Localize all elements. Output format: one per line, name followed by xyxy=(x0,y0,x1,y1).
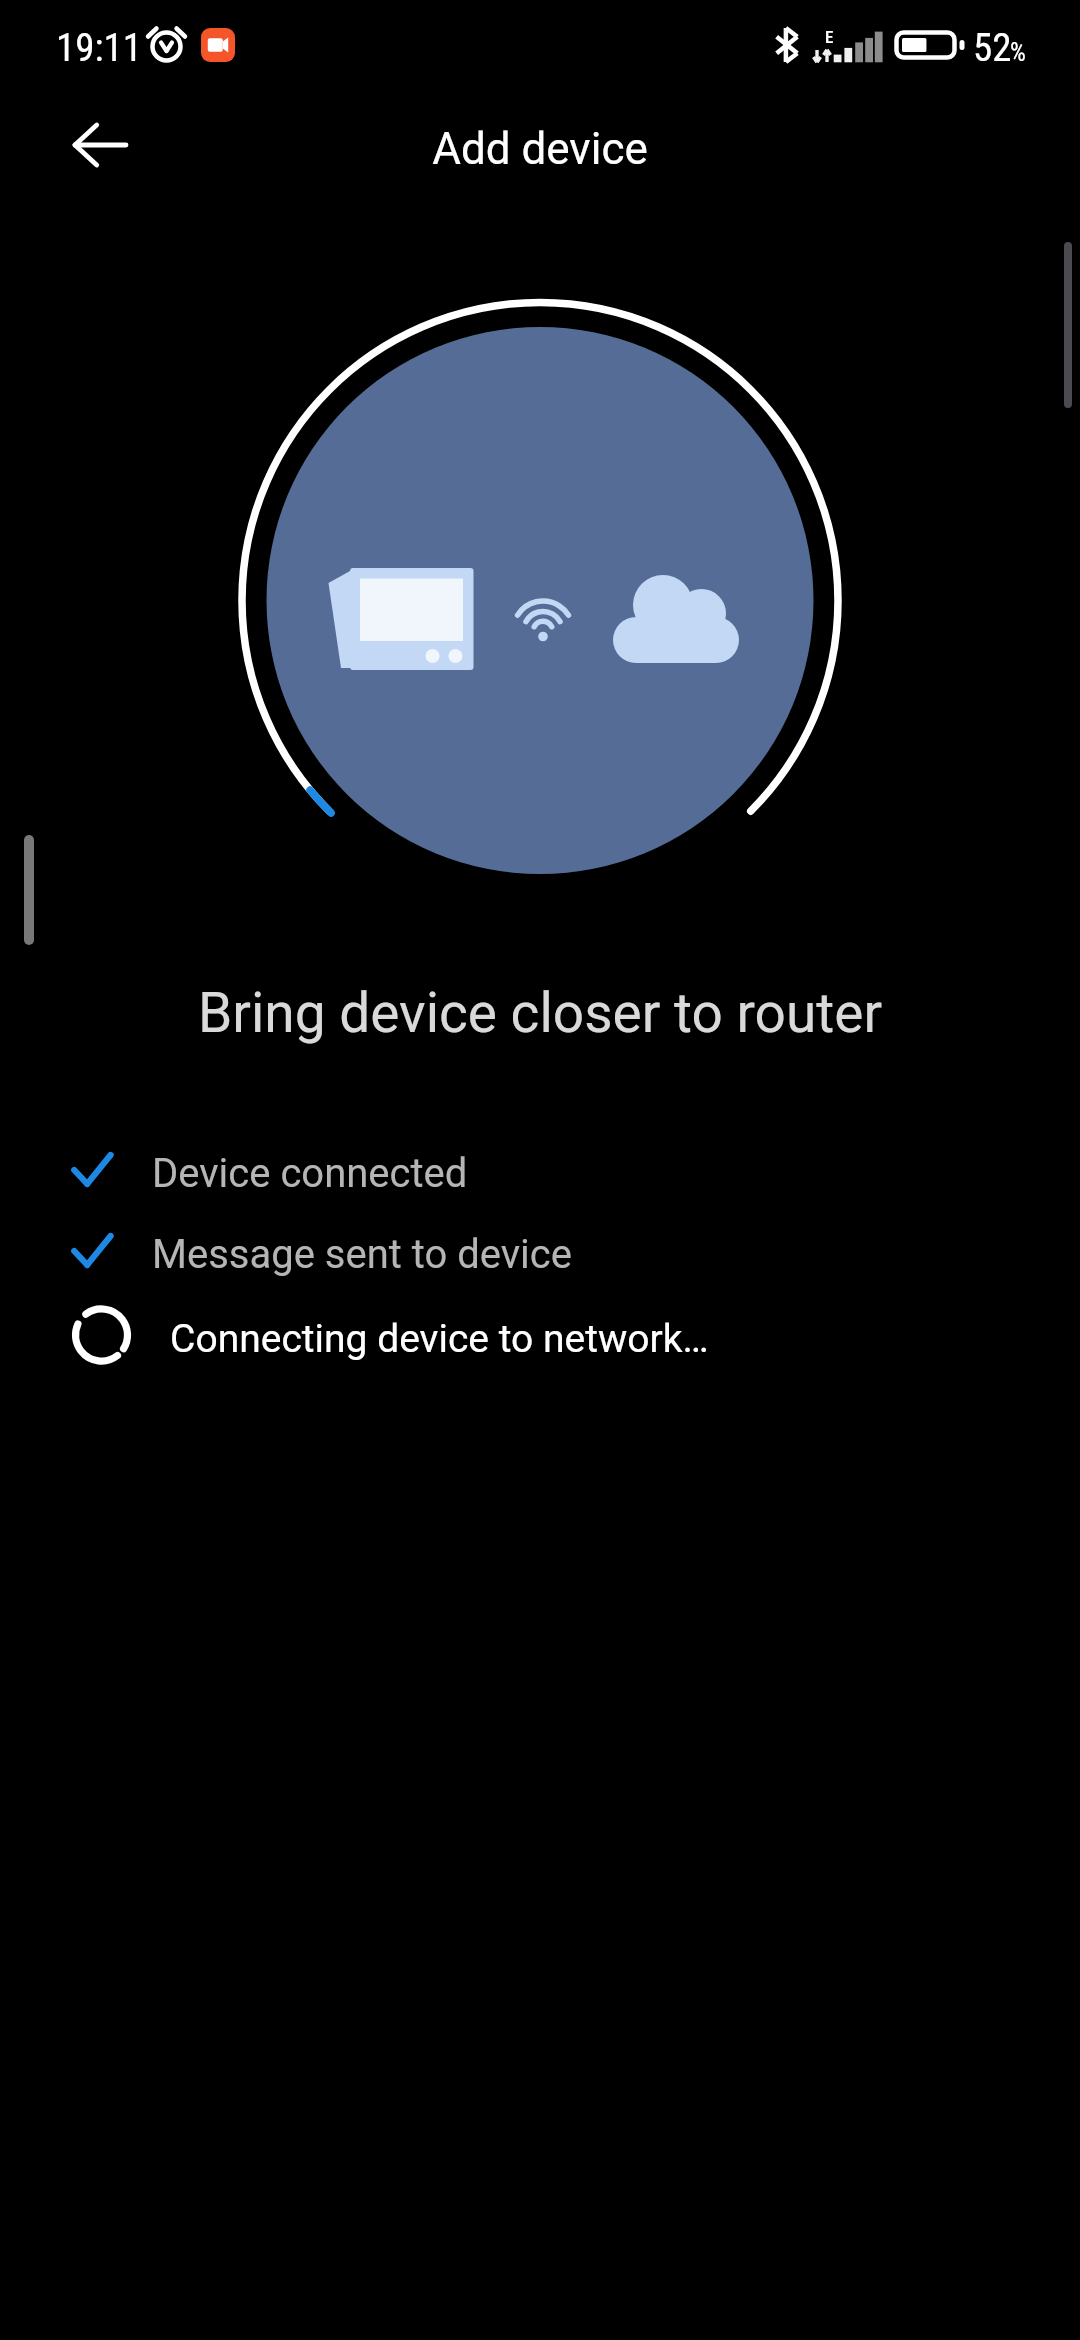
staticText: Message sent to device xyxy=(152,1231,572,1278)
button[interactable]: Back xyxy=(50,95,150,195)
staticText: Connecting device to network… xyxy=(170,1316,709,1362)
button[interactable]: Connecting device to network… xyxy=(55,1296,1000,1372)
staticText: % xyxy=(1010,38,1026,67)
staticText: E xyxy=(825,27,834,47)
staticText: Add device xyxy=(0,123,1080,175)
staticText: Device connected xyxy=(152,1150,468,1197)
staticText: Bring device closer to router xyxy=(0,981,1080,1045)
staticText: 52 xyxy=(973,25,1012,71)
button[interactable]: Device connected xyxy=(55,1138,1000,1200)
staticText: 19:11 xyxy=(56,25,143,71)
button[interactable]: Message sent to device xyxy=(55,1219,1000,1281)
